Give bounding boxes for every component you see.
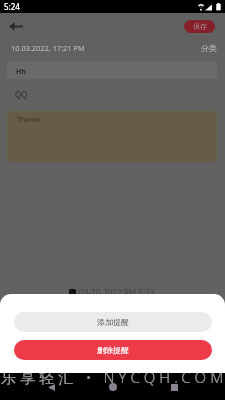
button[interactable]: Back xyxy=(40,376,62,398)
button[interactable]: 保存 xyxy=(184,20,215,33)
staticText: 10.03.2022, 17:21 PM xyxy=(11,43,85,53)
button[interactable]: 删除提醒 xyxy=(14,340,212,360)
staticText: QQ xyxy=(15,89,28,100)
staticText: Hh xyxy=(16,67,26,77)
staticText: 保存 xyxy=(193,22,207,31)
button[interactable]: Back xyxy=(3,15,29,37)
button[interactable]: Home xyxy=(102,376,124,398)
staticText: 分类 xyxy=(201,43,217,53)
button[interactable]: Hh xyxy=(7,61,217,79)
staticText: 删除提醒 xyxy=(97,345,129,355)
staticText: 添加提醒 xyxy=(97,317,129,327)
staticText: Thanks xyxy=(17,115,41,125)
staticText: 乐享轻汇 • NYCQH.COM xyxy=(1,367,225,387)
staticText: 5:24 xyxy=(4,1,20,12)
button[interactable]: Recents xyxy=(163,376,185,398)
button[interactable]: 添加提醒 xyxy=(14,312,212,332)
staticText: 03-10-2022 PM 5:23 xyxy=(79,287,155,298)
